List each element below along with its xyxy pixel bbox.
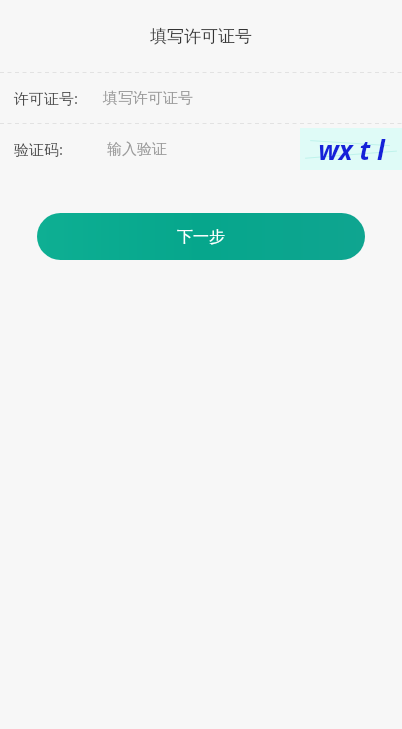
button[interactable]: 下一步	[37, 213, 365, 260]
staticText: 验证码:	[14, 139, 64, 159]
staticText: 填写许可证号	[103, 89, 193, 108]
staticText: 下一步	[177, 227, 225, 247]
staticText: 许可证号:	[14, 88, 79, 108]
button[interactable]: Refresh captcha	[300, 128, 402, 170]
staticText: wx t l	[318, 132, 385, 167]
button[interactable]: 验证码:	[0, 124, 300, 174]
button[interactable]: 许可证号:	[0, 73, 402, 123]
staticText: 输入验证	[107, 140, 167, 159]
staticText: 填写许可证号	[150, 26, 252, 47]
